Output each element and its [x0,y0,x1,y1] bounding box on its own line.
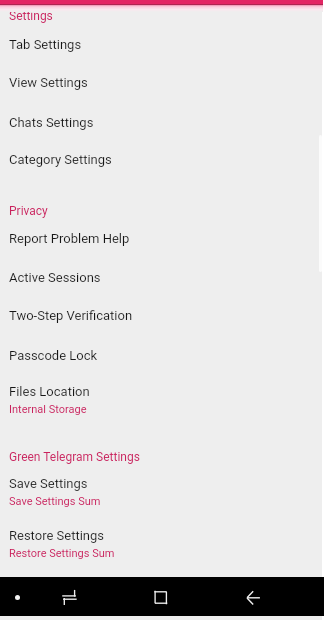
staticText: Active Sessions [9,270,101,285]
button[interactable]: Settings [0,1,322,30]
button[interactable]: Active Sessions [0,263,322,301]
staticText: Settings [9,9,53,23]
button[interactable]: Home [152,586,172,606]
staticText: Restore Settings Sum [9,547,115,560]
staticText: Privacy [9,204,48,218]
staticText: Tab Settings [9,37,82,52]
button[interactable]: Recent apps [60,588,80,608]
button[interactable]: Save Settings [0,469,322,521]
button[interactable]: Category Settings [0,145,322,196]
button[interactable]: Menu [8,577,28,597]
button[interactable]: Report Problem Help [0,224,322,263]
staticText: Two-Step Verification [9,308,133,323]
button[interactable]: Two-Step Verification [0,301,322,341]
staticText: View Settings [9,75,88,90]
staticText: Restore Settings [9,528,105,543]
button[interactable]: Files Location [0,377,322,442]
button[interactable]: Restore Settings [0,521,322,566]
staticText: Files Location [9,384,90,399]
button[interactable]: Green Telegram Settings [0,442,322,469]
button[interactable]: View Settings [0,68,322,108]
staticText: Save Settings Sum [9,495,101,508]
staticText: Green Telegram Settings [9,450,140,464]
button[interactable]: Chats Settings [0,108,322,145]
button[interactable]: Tab Settings [0,30,322,68]
staticText: Internal Storage [9,403,87,416]
button[interactable]: Privacy [0,196,322,224]
button[interactable]: Back [240,588,262,610]
staticText: Category Settings [9,152,112,167]
staticText: Save Settings [9,476,88,491]
staticText: Chats Settings [9,115,94,130]
staticText: Report Problem Help [9,231,130,246]
staticText: Passcode Lock [9,348,98,363]
button[interactable]: Passcode Lock [0,341,322,377]
